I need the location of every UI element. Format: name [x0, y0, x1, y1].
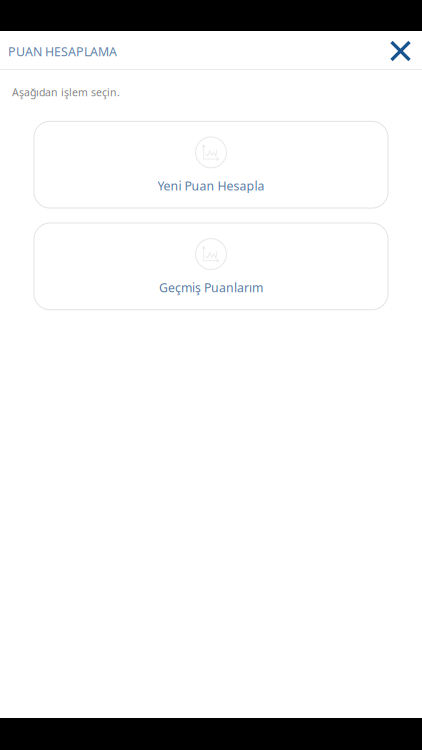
- staticText: Yeni Puan Hesapla: [157, 177, 264, 194]
- button[interactable]: Geçmiş Puanlarım: [34, 223, 388, 310]
- button[interactable]: Yeni Puan Hesapla: [34, 121, 388, 208]
- button[interactable]: Close: [381, 31, 422, 68]
- staticText: PUAN HESAPLAMA: [8, 43, 117, 60]
- staticText: Geçmiş Puanlarım: [159, 279, 263, 296]
- staticText: Aşağıdan işlem seçin.: [12, 85, 120, 99]
